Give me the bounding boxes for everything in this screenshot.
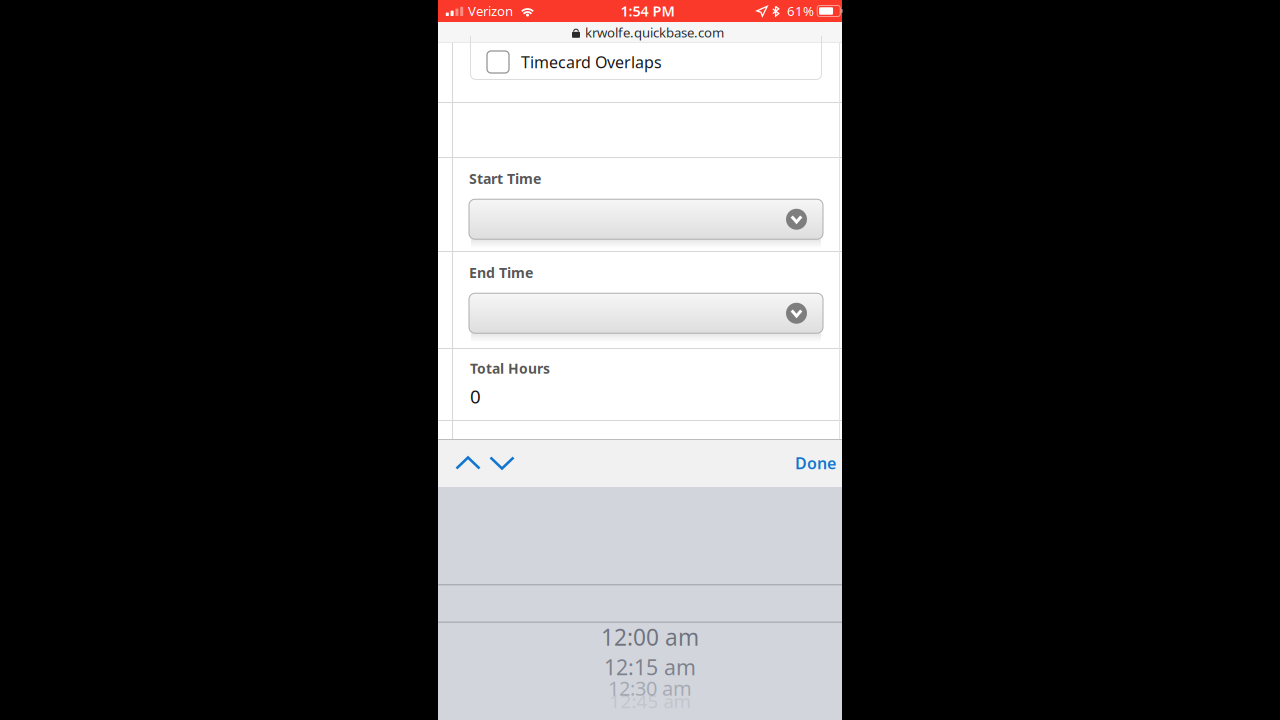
- staticText: End Time: [469, 263, 533, 282]
- staticText: Done: [795, 452, 836, 474]
- button[interactable]: krwolfe.quickbase.com: [438, 22, 842, 43]
- staticText: Total Hours: [470, 359, 550, 378]
- button[interactable]: [438, 199, 842, 239]
- button[interactable]: Timecard Overlaps: [470, 44, 822, 80]
- staticText: 61%: [787, 2, 814, 20]
- staticText: Timecard Overlaps: [521, 51, 662, 73]
- staticText: Verizon: [468, 2, 513, 20]
- button[interactable]: Done: [783, 440, 842, 486]
- staticText: Start Time: [469, 169, 541, 188]
- staticText: 12:15 am: [604, 652, 696, 682]
- button[interactable]: Next field: [485, 439, 519, 487]
- button[interactable]: [438, 293, 842, 333]
- staticText: krwolfe.quickbase.com: [585, 23, 724, 41]
- staticText: 12:45 am: [609, 688, 690, 714]
- staticText: 1:54 PM: [620, 1, 674, 21]
- staticText: 12:30 am: [608, 674, 692, 702]
- staticText: 12:00 am: [601, 622, 699, 652]
- staticText: 0: [470, 384, 481, 409]
- button[interactable]: Previous field: [451, 439, 485, 487]
